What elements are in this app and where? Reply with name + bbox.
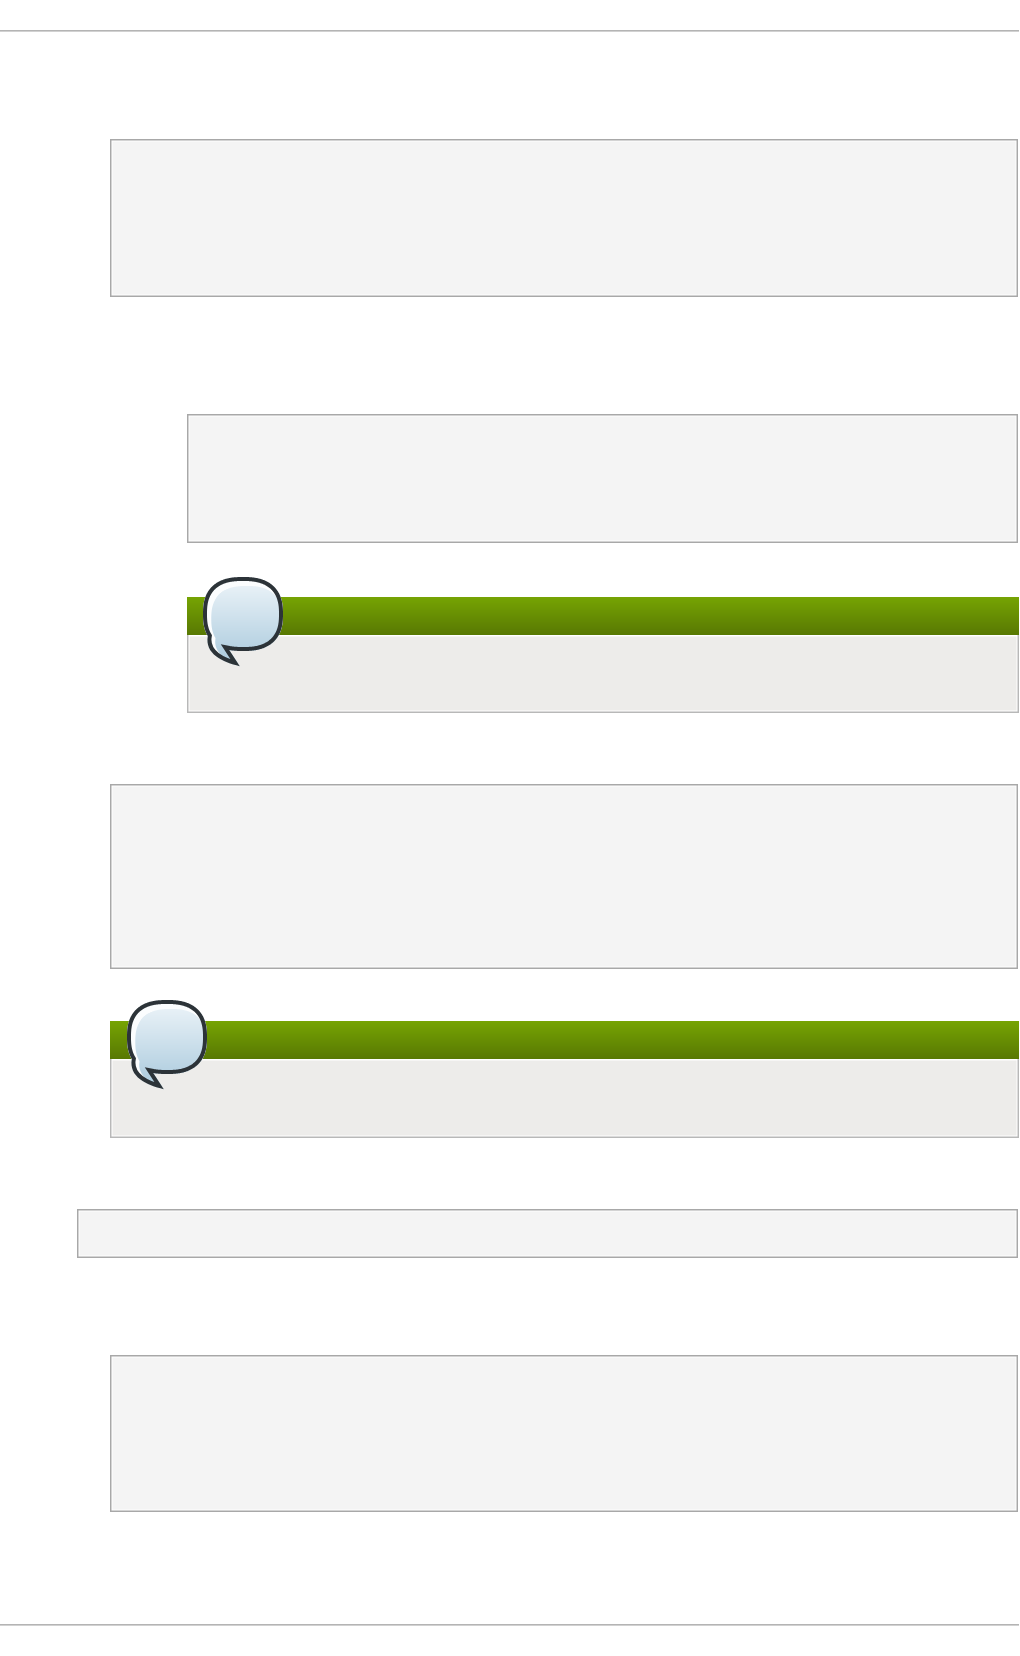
button[interactable] (110, 1059, 1019, 1138)
button[interactable] (110, 1355, 1018, 1512)
button[interactable] (77, 1209, 1018, 1258)
button[interactable] (110, 784, 1018, 969)
button[interactable]: Comments (203, 577, 291, 677)
button[interactable]: Comments (127, 1000, 215, 1100)
button[interactable] (110, 139, 1018, 297)
button[interactable] (110, 1021, 1019, 1059)
button[interactable] (187, 635, 1019, 713)
button[interactable] (187, 414, 1018, 543)
button[interactable] (187, 597, 1019, 635)
